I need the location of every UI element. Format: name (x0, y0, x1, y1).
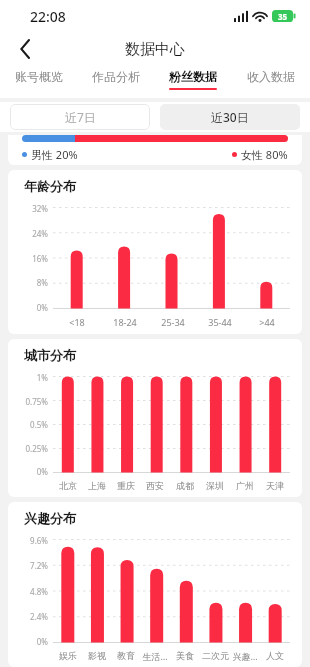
staticText: 2.4% (30, 611, 48, 622)
staticText: 9.6% (30, 535, 48, 546)
staticText: 16% (32, 253, 48, 264)
staticText: 7.2% (30, 560, 48, 571)
staticText: 0.75% (25, 396, 48, 407)
staticText: 城市分布 (24, 347, 76, 363)
staticText: 22:08 (30, 7, 66, 26)
staticText: 25-34 (161, 316, 185, 328)
staticText: >44 (259, 316, 275, 328)
staticText: 收入数据 (247, 69, 295, 84)
staticText: 24% (32, 228, 48, 239)
staticText: 32% (32, 203, 48, 214)
staticText: 0.25% (25, 443, 48, 454)
staticText: 8% (36, 277, 48, 288)
staticText: 数据中心 (125, 40, 185, 59)
button[interactable]: 近30日 (160, 104, 300, 130)
staticText: 粉丝数据 (169, 69, 217, 84)
staticText: <18 (69, 316, 85, 328)
staticText: 账号概览 (15, 69, 63, 84)
staticText: 美食 (176, 650, 194, 661)
staticText: 西安 (146, 480, 164, 491)
staticText: 广州 (236, 480, 254, 491)
staticText: 成都 (176, 480, 194, 491)
staticText: 女性 80% (241, 147, 288, 162)
staticText: 近30日 (211, 109, 249, 125)
staticText: 重庆 (117, 480, 135, 491)
staticText: 二次元 (202, 650, 229, 661)
button[interactable]: Back (8, 32, 42, 66)
button[interactable]: 作品分析 (77, 66, 154, 98)
staticText: 天津 (266, 480, 284, 491)
staticText: 兴趣分布 (24, 510, 76, 526)
button[interactable]: 收入数据 (232, 66, 310, 98)
button[interactable]: 账号概览 (0, 66, 77, 98)
staticText: 娱乐 (59, 650, 77, 661)
staticText: 1% (36, 372, 48, 383)
staticText: 0% (36, 466, 48, 477)
staticText: 4.8% (30, 586, 48, 597)
staticText: 男性 20% (31, 147, 78, 162)
staticText: 18-24 (113, 316, 137, 328)
staticText: 北京 (59, 480, 77, 491)
staticText: 影视 (88, 650, 106, 661)
button[interactable]: 近7日 (10, 104, 150, 130)
staticText: 上海 (88, 480, 106, 491)
staticText: 作品分析 (92, 69, 140, 84)
staticText: 人文 (266, 650, 284, 661)
staticText: 教育 (117, 650, 135, 661)
staticText: 0% (36, 636, 48, 647)
staticText: 近7日 (65, 109, 96, 125)
staticText: 年龄分布 (24, 178, 76, 194)
staticText: 0% (36, 302, 48, 313)
staticText: 深圳 (206, 480, 224, 491)
staticText: 0.5% (30, 419, 48, 430)
staticText: 35 (278, 11, 288, 22)
button[interactable]: 粉丝数据 (154, 66, 232, 98)
staticText: 兴趣… (232, 650, 258, 661)
staticText: 35-44 (208, 316, 232, 328)
staticText: 生活… (142, 650, 168, 661)
